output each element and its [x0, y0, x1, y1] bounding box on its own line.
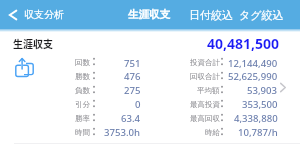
staticText: 0 [135, 98, 141, 111]
staticText: 勝数 [75, 72, 90, 81]
staticText: 収支分析 [24, 8, 64, 21]
button[interactable]: Details [274, 78, 292, 96]
button[interactable]: 日付絞込 [186, 0, 236, 29]
staticText: 751 [124, 57, 141, 70]
button[interactable]: Back [0, 0, 70, 29]
staticText: 10,787/h [238, 126, 278, 139]
staticText: 63.4 [121, 112, 141, 125]
staticText: 時間 [75, 128, 90, 137]
staticText: 平均額 [197, 86, 220, 95]
other: Back [9, 10, 17, 20]
staticText: 40,481,500 [207, 34, 280, 53]
staticText: 引分 [75, 100, 90, 109]
button[interactable]: Share [13, 56, 37, 80]
staticText: 53,903 [247, 84, 278, 97]
staticText: 12,144,490 [228, 57, 278, 70]
staticText: 476 [124, 70, 141, 83]
staticText: 52,625,990 [228, 70, 278, 83]
staticText: 生涯収支 [13, 36, 53, 50]
staticText: 回数 [75, 58, 90, 67]
staticText: 最高回収 [190, 114, 220, 123]
staticText: 生涯収支 [128, 8, 170, 21]
staticText: 4,338,880 [234, 112, 278, 125]
staticText: タグ絞込 [239, 8, 284, 22]
staticText: 353,500 [242, 98, 278, 111]
staticText: 負数 [75, 86, 90, 95]
button[interactable]: 生涯収支 [125, 0, 173, 29]
button[interactable]: タグ絞込 [236, 0, 287, 29]
staticText: 3753.0h [104, 126, 141, 139]
staticText: 日付絞込 [189, 8, 233, 22]
staticText: 投資合計 [190, 58, 220, 67]
staticText: 勝率 [75, 114, 90, 123]
staticText: 回収合計 [190, 72, 220, 81]
staticText: 275 [124, 84, 141, 97]
staticText: 時給 [205, 128, 220, 137]
staticText: 最高投資 [190, 100, 220, 109]
